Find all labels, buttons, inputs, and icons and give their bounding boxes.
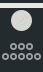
- button[interactable]: Control 7: [26, 53, 33, 60]
- button[interactable]: Control 8: [34, 53, 41, 60]
- button[interactable]: Control 5: [10, 53, 17, 60]
- button[interactable]: Control 6: [18, 53, 25, 60]
- button[interactable]: Control 4: [2, 53, 9, 60]
- button[interactable]: Control 3: [26, 43, 33, 50]
- button[interactable]: Control 2: [18, 43, 25, 50]
- button[interactable]: Control 1: [10, 43, 17, 50]
